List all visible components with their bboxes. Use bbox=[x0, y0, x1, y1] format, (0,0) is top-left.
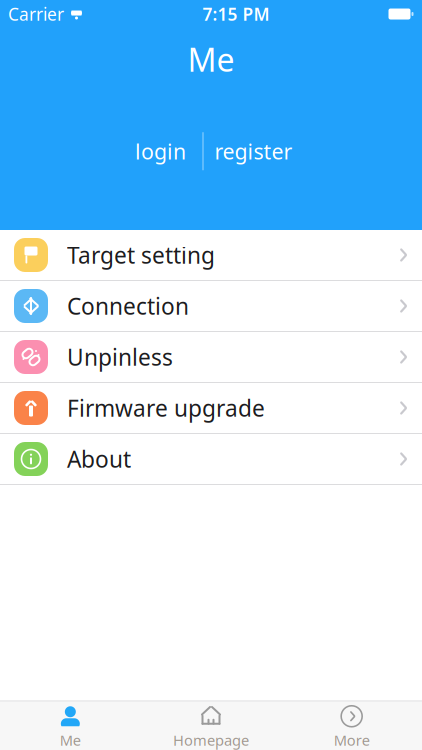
staticText: Me bbox=[187, 38, 234, 80]
button[interactable]: Firmware upgrade bbox=[0, 383, 422, 434]
button[interactable]: login bbox=[118, 131, 202, 171]
staticText: Me bbox=[60, 730, 81, 750]
button[interactable]: Me bbox=[0, 703, 141, 750]
button[interactable]: Homepage bbox=[141, 703, 281, 750]
staticText: More bbox=[334, 730, 370, 750]
button[interactable]: Connection bbox=[0, 281, 422, 332]
button[interactable]: register bbox=[203, 131, 303, 171]
staticText: Firmware upgrade bbox=[67, 393, 265, 423]
staticText: Connection bbox=[67, 291, 189, 321]
staticText: Homepage bbox=[173, 730, 249, 750]
button[interactable]: About bbox=[0, 434, 422, 485]
button[interactable]: Unpinless bbox=[0, 332, 422, 383]
staticText: 7:15 PM bbox=[202, 2, 269, 25]
staticText: login bbox=[135, 137, 186, 165]
staticText: Unpinless bbox=[67, 342, 173, 372]
staticText: About bbox=[67, 444, 131, 474]
staticText: Target setting bbox=[67, 240, 215, 270]
button[interactable]: Target setting bbox=[0, 230, 422, 281]
staticText: Carrier bbox=[8, 2, 64, 25]
staticText: register bbox=[214, 137, 292, 165]
button[interactable]: More bbox=[281, 703, 422, 750]
